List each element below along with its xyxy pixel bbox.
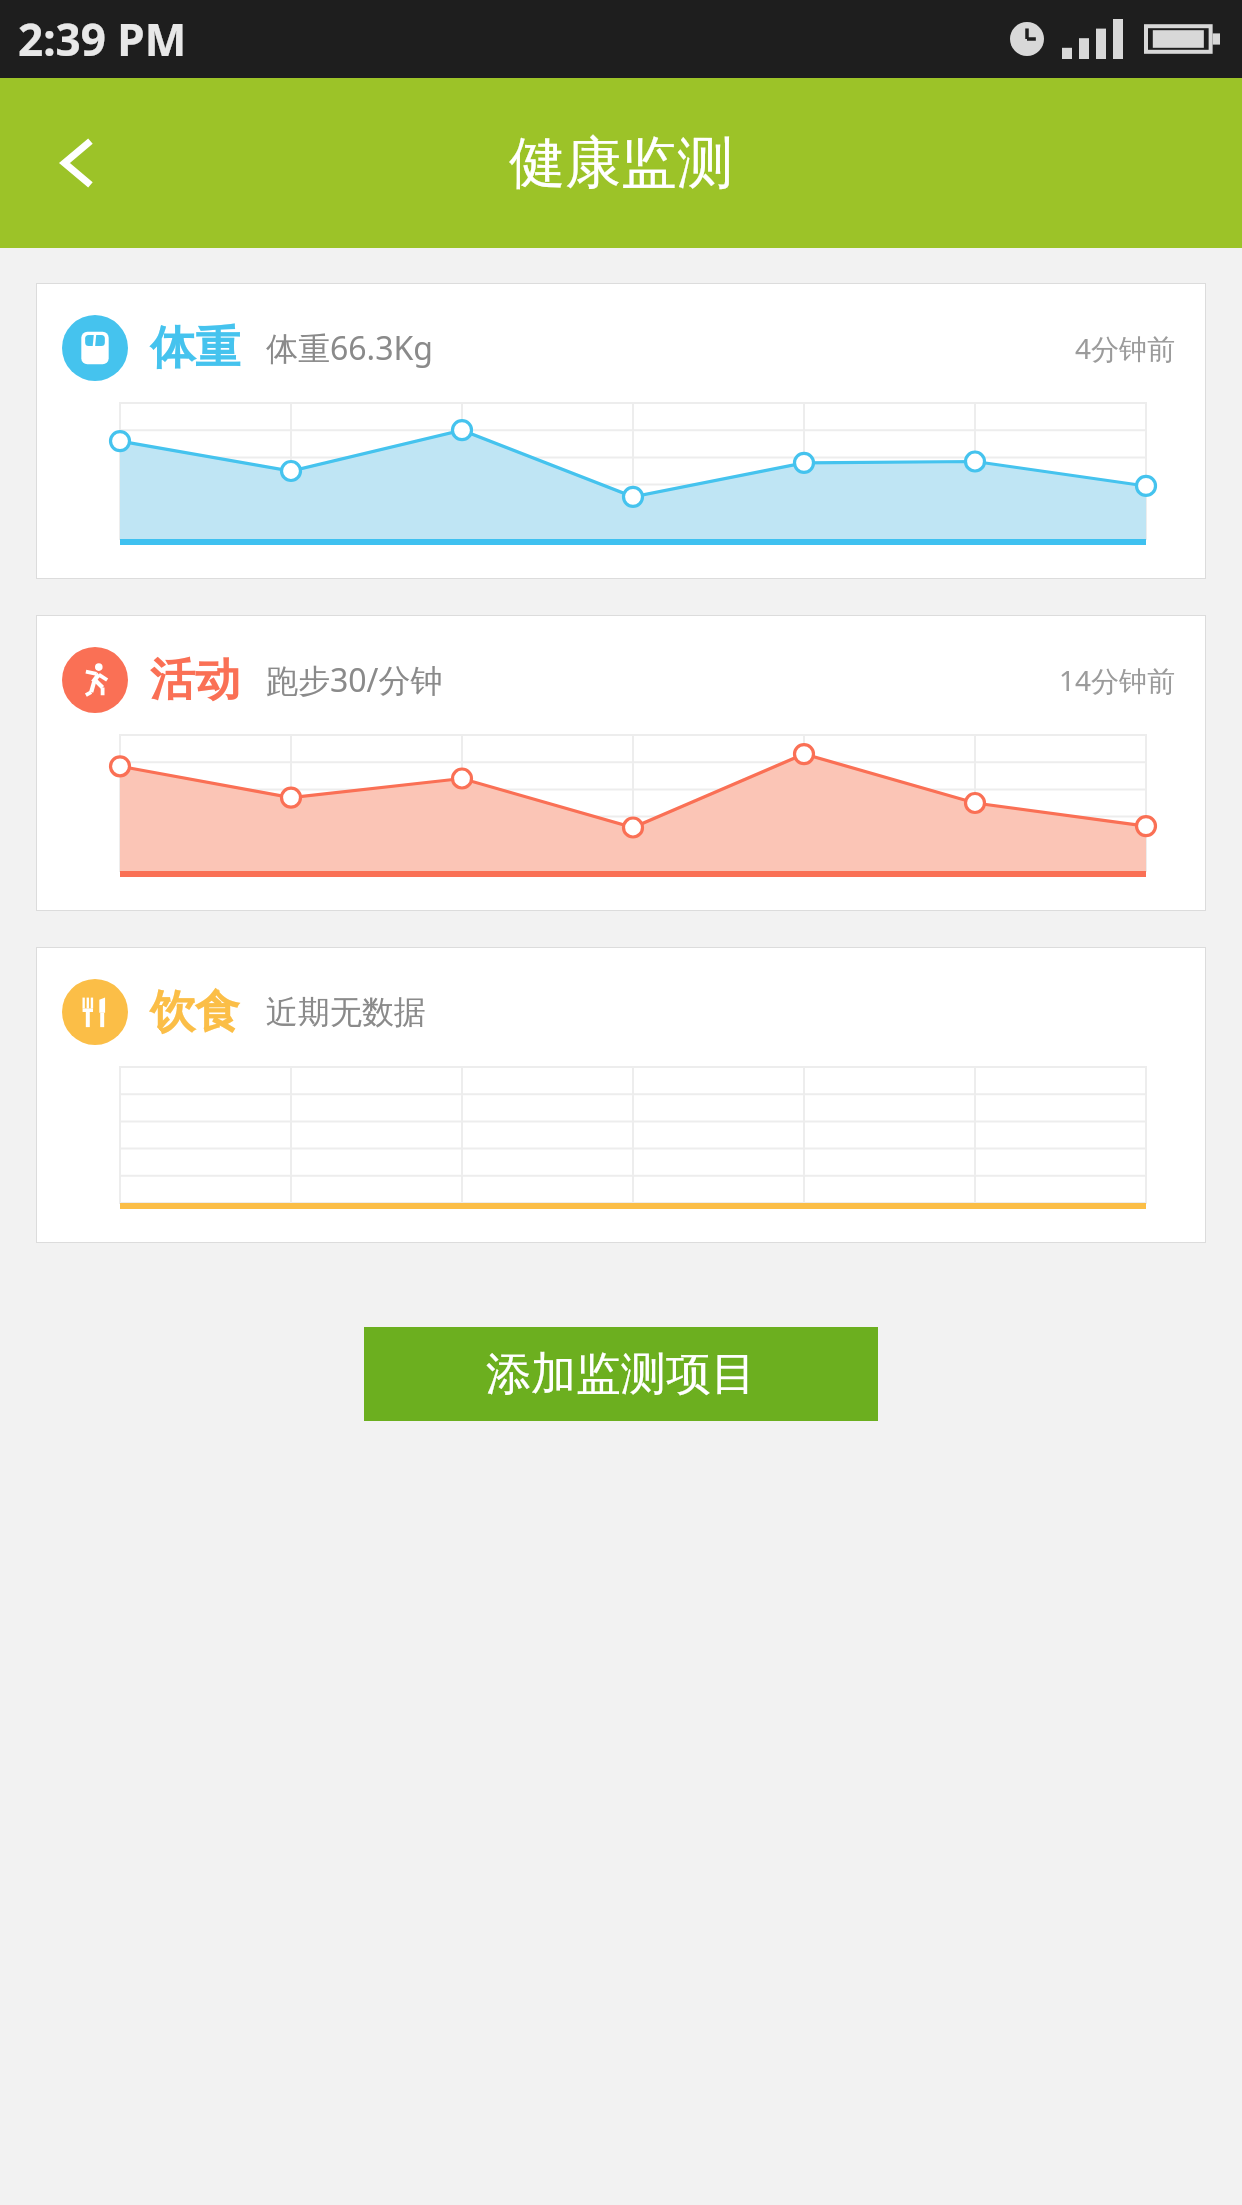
button[interactable]: 活动 [36,615,1206,911]
button[interactable]: 添加监测项目 [364,1327,878,1421]
button[interactable]: 饮食 [36,947,1206,1243]
staticText: 4分钟前 [1075,329,1176,367]
button[interactable]: 体重 [36,283,1206,579]
staticText: 近期无数据 [266,992,426,1032]
staticText: 体重66.3Kg [266,326,433,370]
staticText: 体重 [150,320,240,377]
staticText: 添加监测项目 [486,1346,756,1403]
staticText: 活动 [150,652,240,709]
staticText: 2:39 PM [18,9,187,69]
staticText: 健康监测 [509,128,733,199]
button[interactable]: Back [36,120,122,206]
staticText: 14分钟前 [1059,661,1176,699]
staticText: 饮食 [150,984,240,1041]
staticText: 跑步30/分钟 [266,658,443,702]
